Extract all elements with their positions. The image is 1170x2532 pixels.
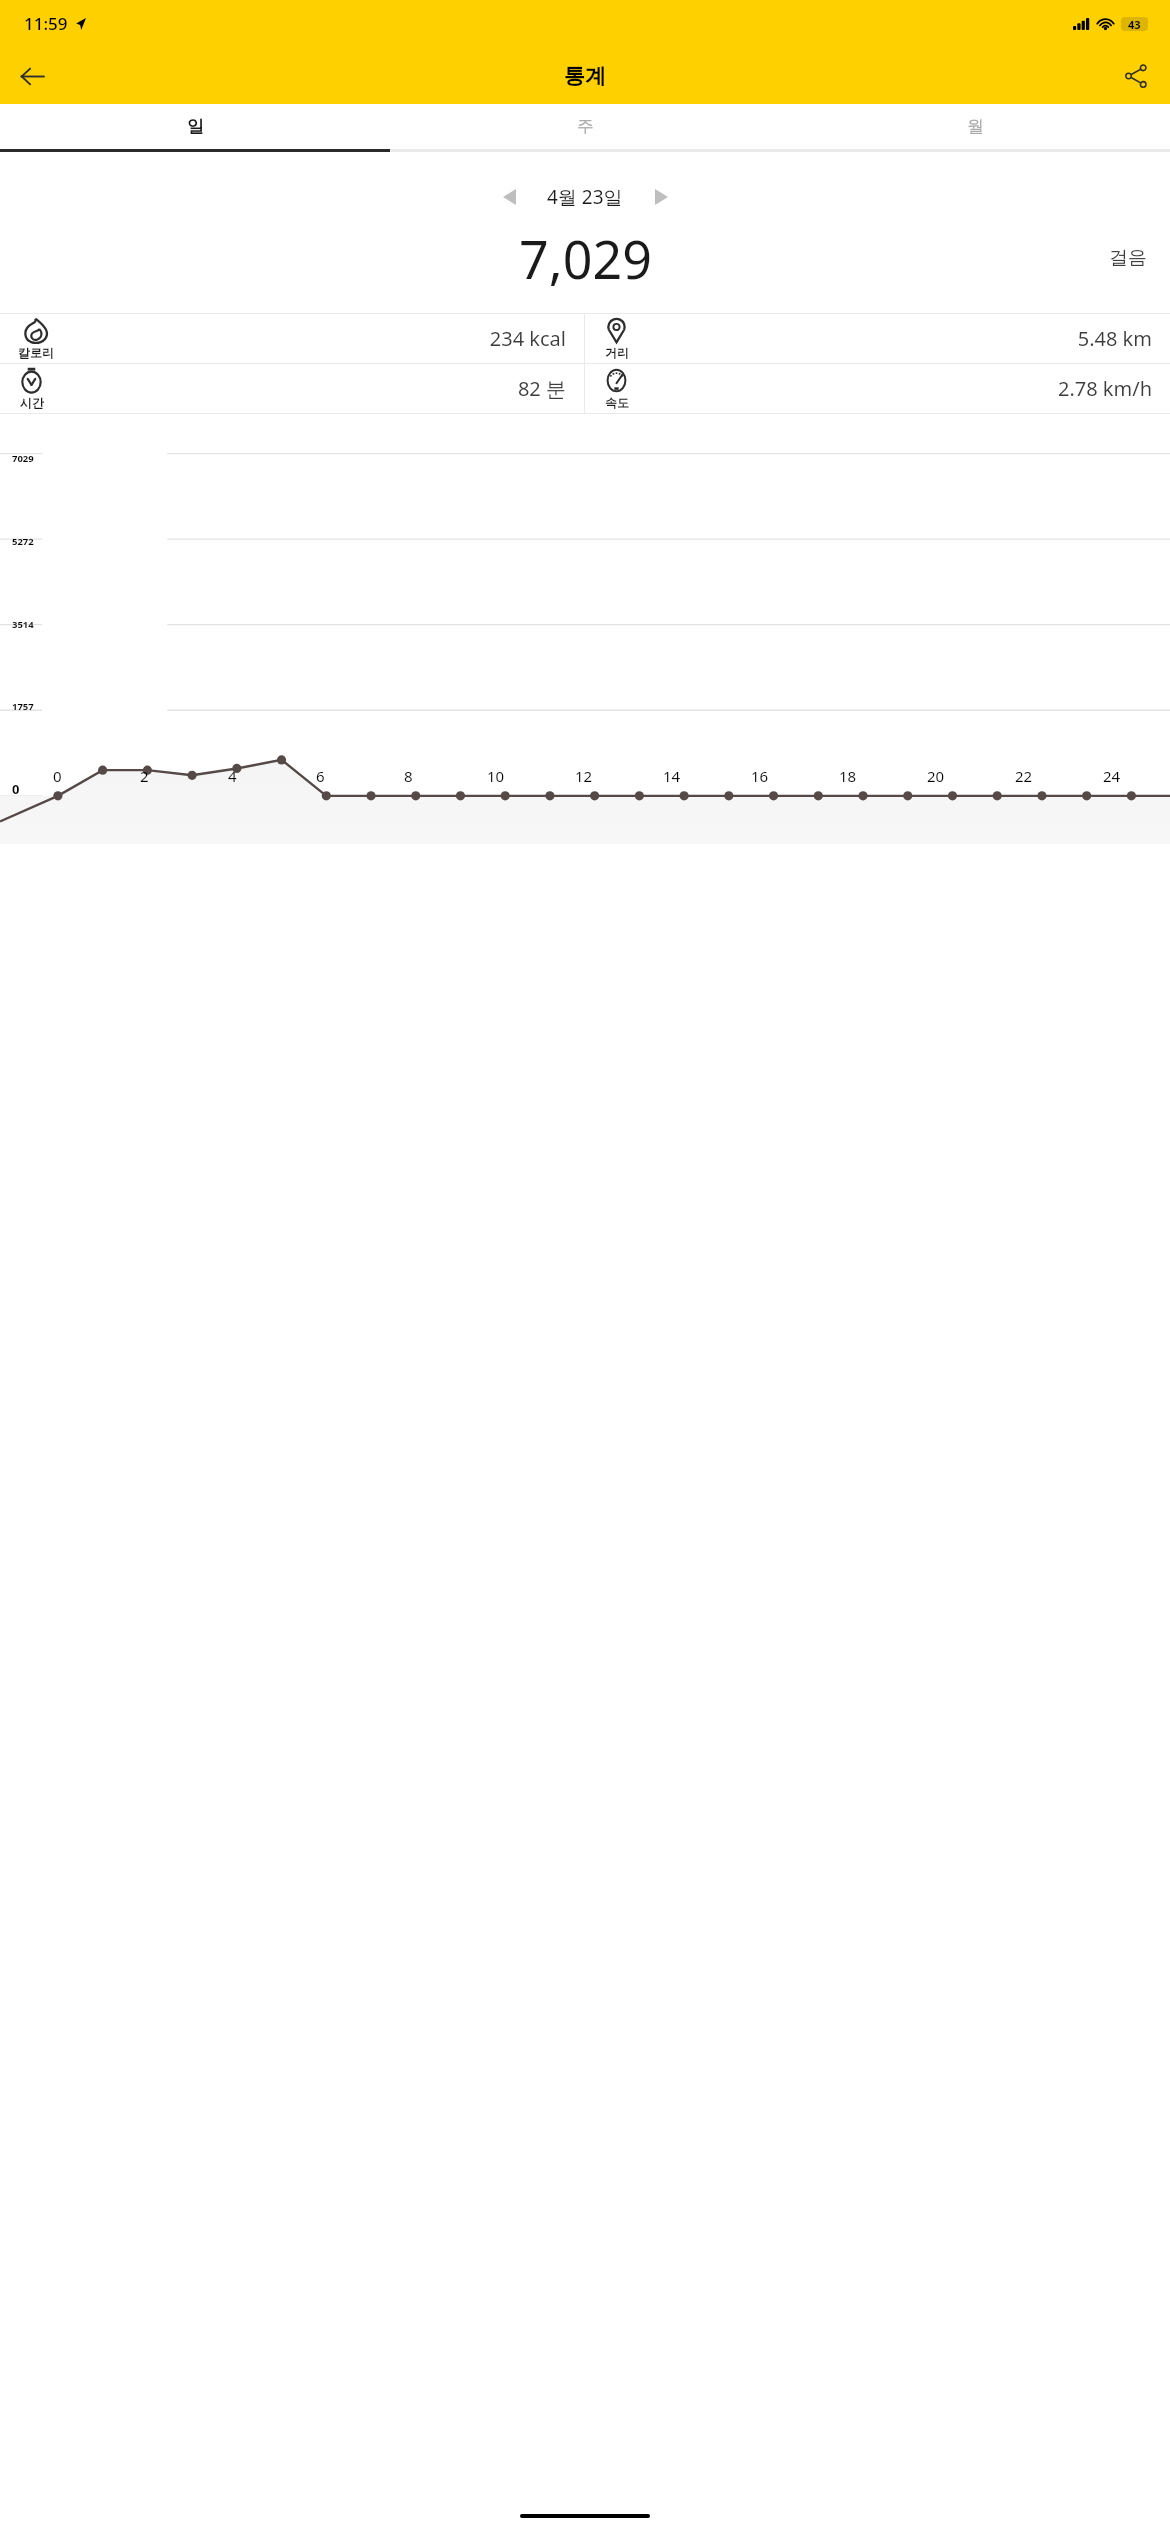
- staticText: 5.48 km: [630, 325, 1152, 352]
- staticText: 주: [577, 116, 594, 137]
- button[interactable]: Next day: [639, 179, 683, 215]
- button[interactable]: 월: [780, 104, 1170, 149]
- button[interactable]: 칼로리: [0, 314, 584, 363]
- staticText: 5272: [12, 535, 34, 548]
- button[interactable]: 일: [0, 104, 390, 149]
- staticText: 14: [663, 766, 681, 786]
- staticText: 속도: [605, 395, 629, 410]
- staticText: 2.78 km/h: [630, 375, 1152, 402]
- staticText: 2: [140, 766, 149, 786]
- staticText: 월: [967, 116, 984, 137]
- staticText: 칼로리: [18, 345, 54, 360]
- staticText: 1757: [12, 700, 34, 713]
- staticText: 거리: [605, 345, 629, 360]
- staticText: 6: [316, 766, 325, 786]
- staticText: 0: [12, 780, 20, 798]
- staticText: 일: [187, 116, 204, 137]
- button[interactable]: 속도: [585, 364, 1170, 413]
- staticText: 0: [53, 766, 62, 786]
- staticText: 걸음: [1109, 246, 1147, 270]
- button[interactable]: 거리: [585, 314, 1170, 363]
- staticText: 통계: [564, 63, 606, 89]
- staticText: 7,029: [519, 223, 652, 294]
- staticText: 82 분: [45, 375, 566, 402]
- staticText: 16: [751, 766, 769, 786]
- staticText: 4월 23일: [547, 184, 623, 210]
- button[interactable]: 시간: [0, 364, 584, 413]
- staticText: 24: [1103, 766, 1121, 786]
- staticText: 20: [927, 766, 945, 786]
- staticText: 시간: [20, 395, 44, 410]
- staticText: 4: [228, 766, 237, 786]
- staticText: 234 kcal: [54, 325, 566, 352]
- staticText: 18: [839, 766, 857, 786]
- button[interactable]: Previous day: [487, 179, 531, 215]
- staticText: 12: [575, 766, 593, 786]
- staticText: 43: [1128, 17, 1141, 31]
- button[interactable]: Share: [1112, 52, 1160, 100]
- staticText: 3514: [12, 618, 34, 631]
- staticText: 7029: [12, 452, 34, 465]
- button[interactable]: Back: [8, 52, 56, 100]
- staticText: 8: [404, 766, 413, 786]
- staticText: 22: [1015, 766, 1033, 786]
- staticText: 11:59: [24, 12, 68, 35]
- staticText: 10: [487, 766, 505, 786]
- button[interactable]: 주: [390, 104, 780, 149]
